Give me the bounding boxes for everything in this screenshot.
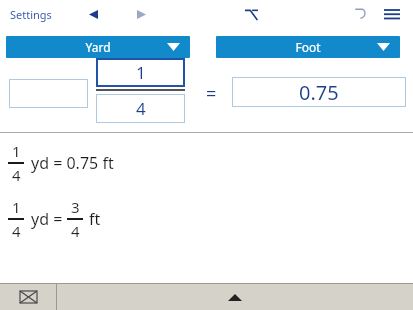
staticText: 1 bbox=[12, 197, 21, 217]
staticText: 4 bbox=[12, 221, 21, 241]
button[interactable] bbox=[57, 284, 413, 310]
staticText: 0.75 bbox=[299, 79, 339, 106]
staticText: 4 bbox=[136, 97, 146, 120]
button[interactable]: 1 bbox=[96, 58, 185, 87]
staticText: = bbox=[206, 81, 217, 106]
staticText: yd = 0.75 ft bbox=[31, 152, 114, 174]
staticText: Yard bbox=[85, 39, 111, 55]
staticText: 1 bbox=[136, 61, 146, 84]
button[interactable]: 0.75 bbox=[232, 77, 406, 107]
button[interactable]: Menu bbox=[379, 1, 405, 27]
button[interactable]: Yard bbox=[6, 36, 190, 58]
staticText: 1 bbox=[12, 141, 21, 161]
button[interactable]: Next bbox=[130, 3, 152, 25]
staticText: 4 bbox=[12, 165, 21, 185]
staticText: Settings bbox=[10, 7, 52, 22]
button[interactable]: Previous bbox=[82, 3, 104, 25]
button[interactable] bbox=[9, 79, 88, 108]
button[interactable]: Undo bbox=[347, 1, 373, 27]
staticText: 4 bbox=[71, 221, 80, 241]
staticText: yd = bbox=[31, 208, 67, 230]
button[interactable]: 4 bbox=[96, 94, 185, 123]
button[interactable]: Mail bbox=[0, 284, 56, 310]
button[interactable]: Foot bbox=[216, 36, 400, 58]
button[interactable]: Alternate bbox=[238, 1, 264, 27]
staticText: ft bbox=[89, 208, 101, 230]
button[interactable]: Settings bbox=[8, 3, 54, 26]
staticText: 3 bbox=[71, 197, 80, 217]
staticText: Foot bbox=[295, 39, 321, 55]
